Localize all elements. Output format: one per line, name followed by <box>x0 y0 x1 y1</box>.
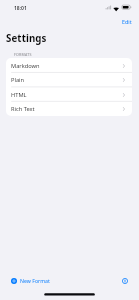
button[interactable]: Info <box>119 275 131 287</box>
button[interactable]: Markdown <box>6 58 132 72</box>
button[interactable]: Rich Text <box>6 101 132 115</box>
staticText: Rich Text <box>11 105 35 113</box>
button[interactable]: Plain <box>6 72 132 86</box>
button[interactable]: New Format <box>8 274 53 287</box>
staticText: 18:01 <box>14 5 27 12</box>
staticText: Markdown <box>11 62 40 70</box>
staticText: FORMATS <box>14 52 32 57</box>
staticText: HTML <box>11 91 27 99</box>
staticText: Settings <box>6 32 47 45</box>
button[interactable]: HTML <box>6 87 132 101</box>
button[interactable]: Edit <box>118 16 136 27</box>
staticText: Edit <box>122 18 132 25</box>
staticText: Plain <box>11 76 25 84</box>
staticText: New Format <box>20 277 50 284</box>
